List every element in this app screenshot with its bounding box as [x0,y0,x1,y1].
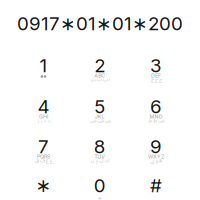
staticText: 5 [94,95,105,118]
staticText: ض ط ظ [147,115,164,126]
staticText: 2 [94,54,105,77]
staticText: TUV [94,153,105,160]
staticText: د ذ ر ز [37,115,50,126]
button[interactable]: 7 [15,126,71,166]
staticText: GHI [39,113,48,120]
staticText: 6 [150,95,162,118]
button[interactable]: 5 [72,86,128,126]
button[interactable]: 6 [128,86,184,126]
button[interactable]: 4 [15,86,71,126]
staticText: ∗ [35,175,51,196]
staticText: 7 [38,135,49,158]
staticText: + [97,193,102,200]
staticText: 3 [150,54,162,77]
staticText: 1 [39,54,47,77]
staticText: 4 [37,95,49,118]
staticText: DEF [151,72,161,79]
button[interactable]: 2 [72,45,128,85]
staticText: 8 [94,135,106,158]
staticText: MNO [149,113,162,120]
staticText: س ش ص [89,115,110,126]
button[interactable]: 9 [128,126,184,166]
button[interactable]: 1 [15,45,71,85]
button[interactable]: 0917∗01∗01∗200 [17,12,183,35]
staticText: PQRS [37,153,50,160]
staticText: ع غ ف ق [34,155,52,166]
staticText: 0917∗01∗01∗200 [17,12,183,35]
button[interactable]: 0 [72,165,128,200]
button[interactable]: 8 [72,126,128,166]
staticText: ج ح خ [150,74,161,85]
staticText: JKL [95,113,105,120]
staticText: # [150,174,162,197]
button[interactable]: # [128,165,184,200]
staticText: ABC [94,72,105,79]
staticText: ك ل م ن [90,155,109,166]
staticText: 9 [150,135,162,158]
staticText: 0 [94,174,106,197]
button[interactable]: ∗ [15,165,71,200]
staticText: ا ب ت ث [90,74,109,85]
staticText: WXYZ [148,153,164,160]
staticText: ه و ي [150,155,162,166]
button[interactable]: 3 [128,45,184,85]
